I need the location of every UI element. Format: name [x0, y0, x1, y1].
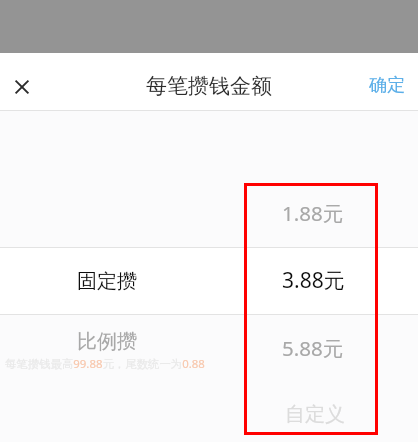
staticText: 5.88元: [282, 334, 344, 362]
button[interactable]: 自定义: [214, 382, 418, 442]
button[interactable]: 固定攒: [0, 252, 214, 312]
button[interactable]: Close: [0, 55, 45, 110]
button[interactable]: 1.88元: [214, 181, 418, 248]
staticText: 每笔攒钱金额: [146, 73, 272, 99]
button[interactable]: 5.88元: [214, 315, 418, 382]
staticText: 确定: [369, 74, 405, 97]
button[interactable]: 3.88元: [214, 248, 418, 314]
staticText: 自定义: [285, 402, 345, 427]
button[interactable]: 确定: [355, 55, 418, 110]
staticText: 固定攒: [77, 269, 137, 294]
staticText: 1.88元: [282, 199, 344, 227]
staticText: 3.88元: [282, 266, 345, 295]
staticText: 比例攒: [77, 329, 137, 354]
staticText: 每笔攒钱最高99.88元，尾数统一为0.88: [5, 356, 205, 372]
button[interactable]: 比例攒: [0, 312, 214, 372]
